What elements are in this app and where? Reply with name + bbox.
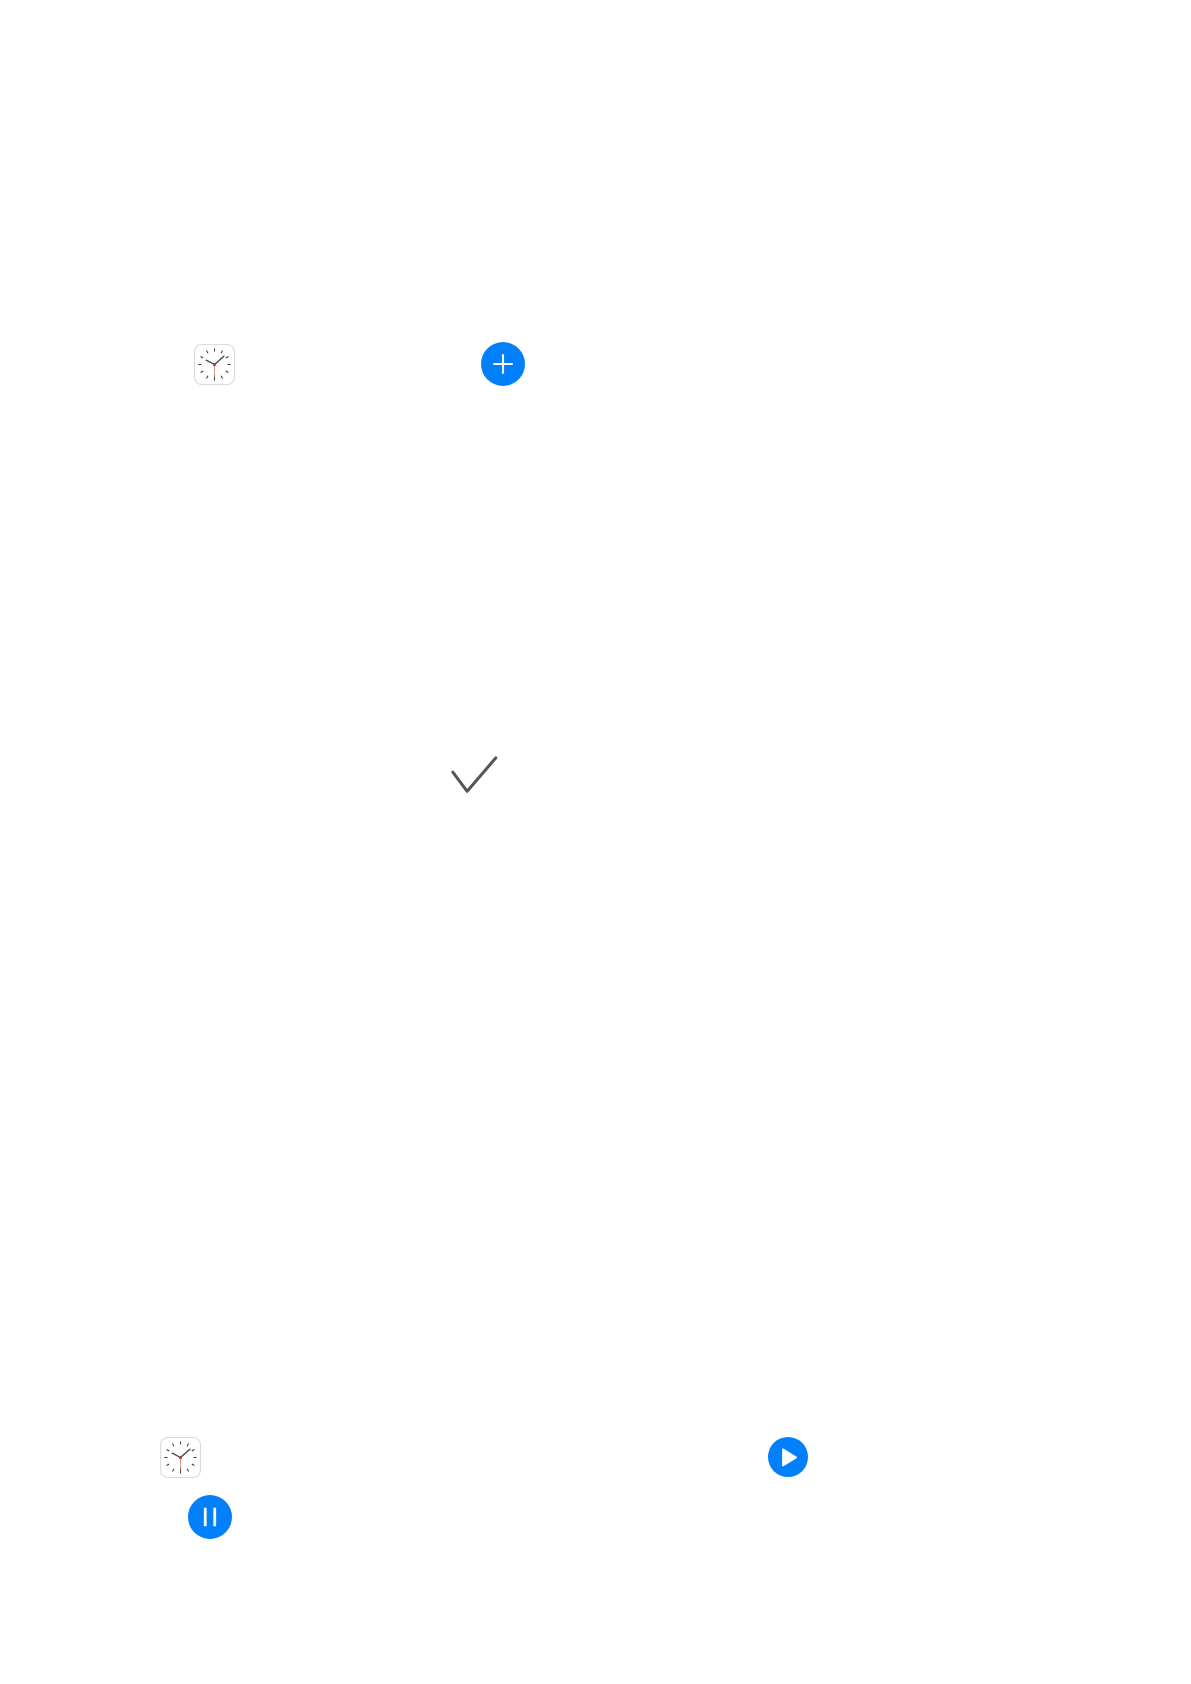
- button[interactable]: Done: [445, 750, 505, 800]
- button[interactable]: Clock: [160, 1437, 201, 1478]
- button[interactable]: Play: [768, 1437, 808, 1477]
- button[interactable]: Add: [481, 342, 525, 386]
- button[interactable]: Clock: [194, 344, 235, 385]
- button[interactable]: Pause: [188, 1495, 232, 1539]
